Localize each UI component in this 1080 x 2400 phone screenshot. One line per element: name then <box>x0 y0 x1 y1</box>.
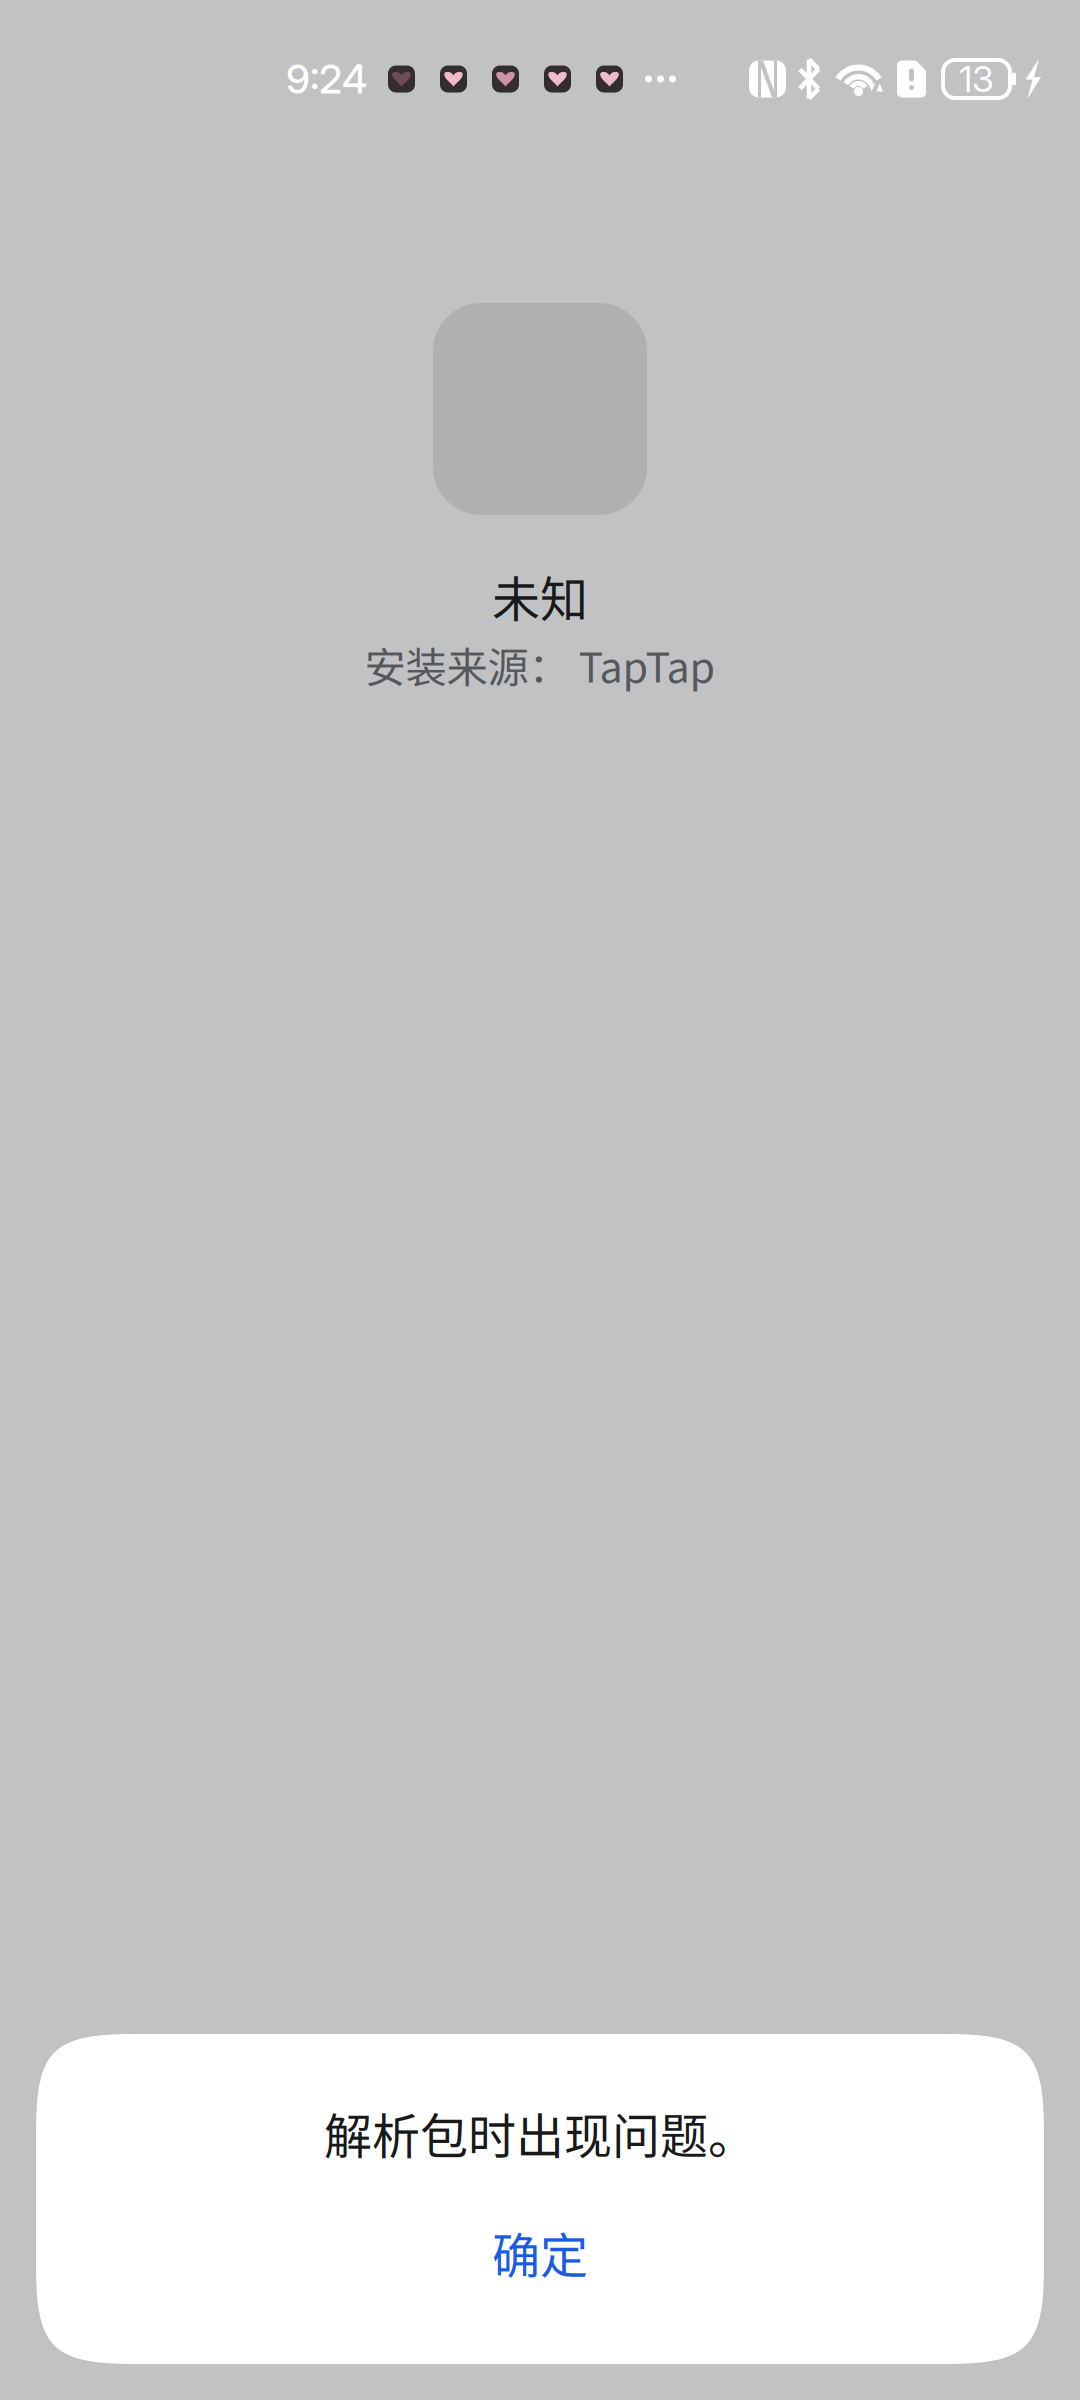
staticText: 解析包时出现问题。 <box>324 2098 756 2167</box>
staticText: 安装来源： TapTap <box>364 634 715 694</box>
staticText: 确定 <box>492 2217 588 2287</box>
staticText: 13 <box>959 57 994 101</box>
staticText: 9:24 <box>286 55 367 103</box>
staticText: 未知 <box>492 561 588 630</box>
button[interactable]: 确定 <box>36 2186 1044 2364</box>
